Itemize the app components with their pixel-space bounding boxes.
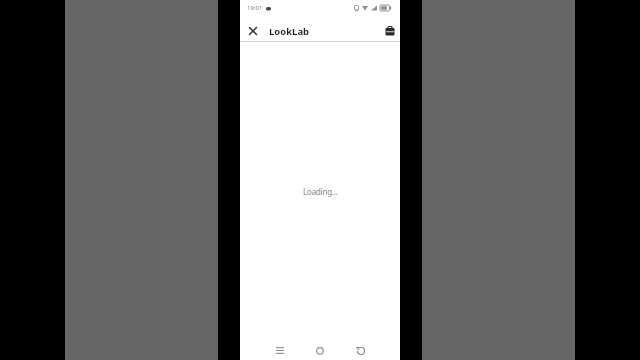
staticText: 19:01 — [247, 4, 263, 12]
button[interactable] — [306, 341, 334, 360]
button[interactable] — [346, 341, 374, 360]
staticText: LookLab — [269, 25, 310, 38]
button[interactable] — [266, 341, 294, 360]
staticText: Loading... — [303, 186, 338, 197]
button[interactable] — [245, 21, 261, 41]
button[interactable] — [382, 21, 398, 41]
